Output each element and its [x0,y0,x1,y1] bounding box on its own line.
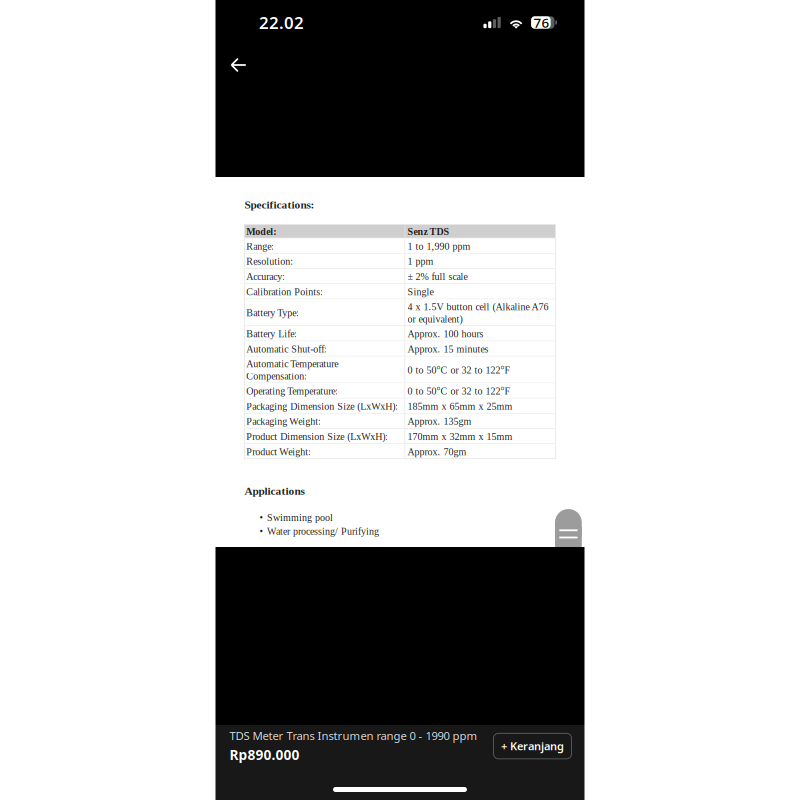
staticText: 22.02 [259,11,304,34]
staticText: Approx. 135gm [408,416,472,427]
staticText: TDS Meter Trans Instrumen range 0 - 1990… [229,728,477,743]
staticText: Senz TDS [408,226,450,237]
staticText: + Keranjang [501,738,564,754]
staticText: Operating Temperature: [246,386,338,397]
staticText: Compensation: [246,371,307,382]
staticText: 4 x 1.5V button cell (Alkaline A76 [408,301,549,312]
staticText: 170mm x 32mm x 15mm [408,431,513,442]
staticText: Battery Type: [246,307,299,318]
staticText: Approx. 70gm [408,446,467,457]
staticText: Accuracy: [246,271,285,282]
staticText: 1 to 1,990 ppm [408,241,471,252]
staticText: 76 [533,13,549,32]
staticText: Approx. 100 hours [408,328,484,339]
staticText: 0 to 50°C or 32 to 122°F [408,365,511,376]
staticText: Water processing/ Purifying [267,526,379,537]
staticText: 0 to 50°C or 32 to 122°F [408,386,511,397]
staticText: Packaging Weight: [246,416,321,427]
staticText: • [259,512,263,523]
staticText: Product Weight: [246,446,311,457]
staticText: 1 ppm [408,256,434,267]
staticText: Applications [244,485,304,497]
staticText: Automatic Shut-off: [246,344,327,355]
button[interactable]: + Keranjang [493,733,571,759]
staticText: Single [408,286,434,297]
staticText: Automatic Temperature [246,358,338,369]
staticText: Rp890.000 [229,745,299,764]
staticText: Calibration Points: [246,286,323,297]
staticText: Battery Life: [246,328,297,339]
staticText: Range: [246,241,274,252]
staticText: Packaging Dimension Size (LxWxH): [246,401,398,412]
staticText: Product Dimension Size (LxWxH): [246,431,388,442]
staticText: Swimming pool [267,512,333,523]
staticText: ± 2% full scale [408,271,468,282]
staticText: 185mm x 65mm x 25mm [408,401,513,412]
staticText: • [259,526,263,537]
staticText: Specifications: [244,198,314,211]
staticText: or equivalent) [408,313,463,325]
button[interactable]: Back [215,45,266,80]
staticText: Approx. 15 minutes [408,344,489,355]
staticText: Model: [246,226,276,237]
staticText: Resolution: [246,256,293,267]
